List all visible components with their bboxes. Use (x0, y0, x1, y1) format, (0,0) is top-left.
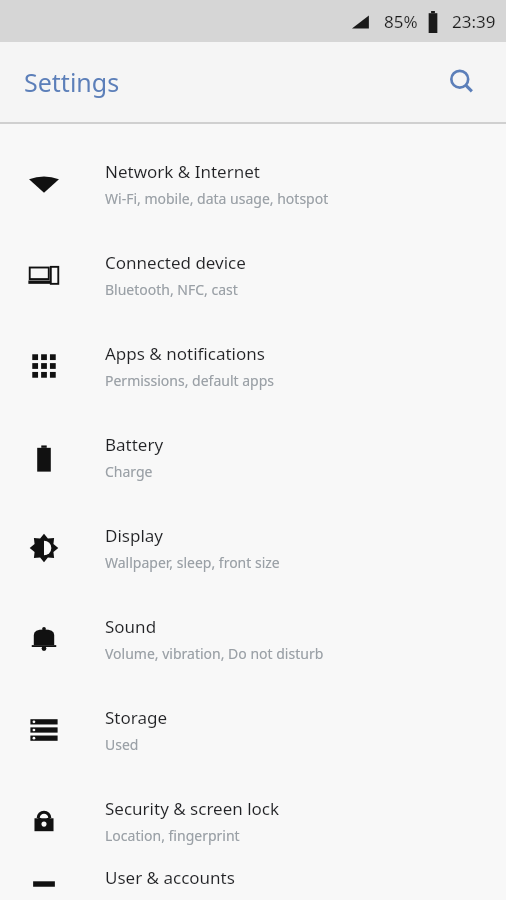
staticText: 85% (384, 10, 418, 33)
staticText: Storage (105, 706, 168, 729)
button[interactable]: Search (438, 58, 486, 106)
staticText: Location, fingerprint (105, 826, 240, 845)
staticText: Wi-Fi, mobile, data usage, hotspot (105, 189, 329, 208)
staticText: Display (105, 524, 163, 547)
button[interactable]: Sound (0, 593, 506, 684)
staticText: User & accounts (105, 866, 235, 889)
button[interactable]: Display (0, 502, 506, 593)
button[interactable]: Connected device (0, 229, 506, 320)
staticText: Used (105, 735, 139, 754)
staticText: Wallpaper, sleep, front size (105, 553, 280, 572)
staticText: Apps & notifications (105, 342, 265, 365)
staticText: Sound (105, 615, 157, 638)
staticText: Security & screen lock (105, 797, 280, 820)
button[interactable]: User & accounts (0, 866, 506, 900)
staticText: Settings (24, 65, 120, 99)
staticText: Permissions, default apps (105, 371, 275, 390)
button[interactable]: Battery (0, 411, 506, 502)
staticText: Battery (105, 433, 164, 456)
staticText: Bluetooth, NFC, cast (105, 280, 238, 299)
staticText: 23:39 (452, 10, 496, 33)
button[interactable]: Network & Internet (0, 138, 506, 229)
staticText: Volume, vibration, Do not disturb (105, 644, 324, 663)
staticText: Charge (105, 462, 153, 481)
button[interactable]: Storage (0, 684, 506, 775)
staticText: Network & Internet (105, 160, 260, 183)
button[interactable]: Apps & notifications (0, 320, 506, 411)
button[interactable]: Security & screen lock (0, 775, 506, 866)
staticText: Connected device (105, 251, 246, 274)
